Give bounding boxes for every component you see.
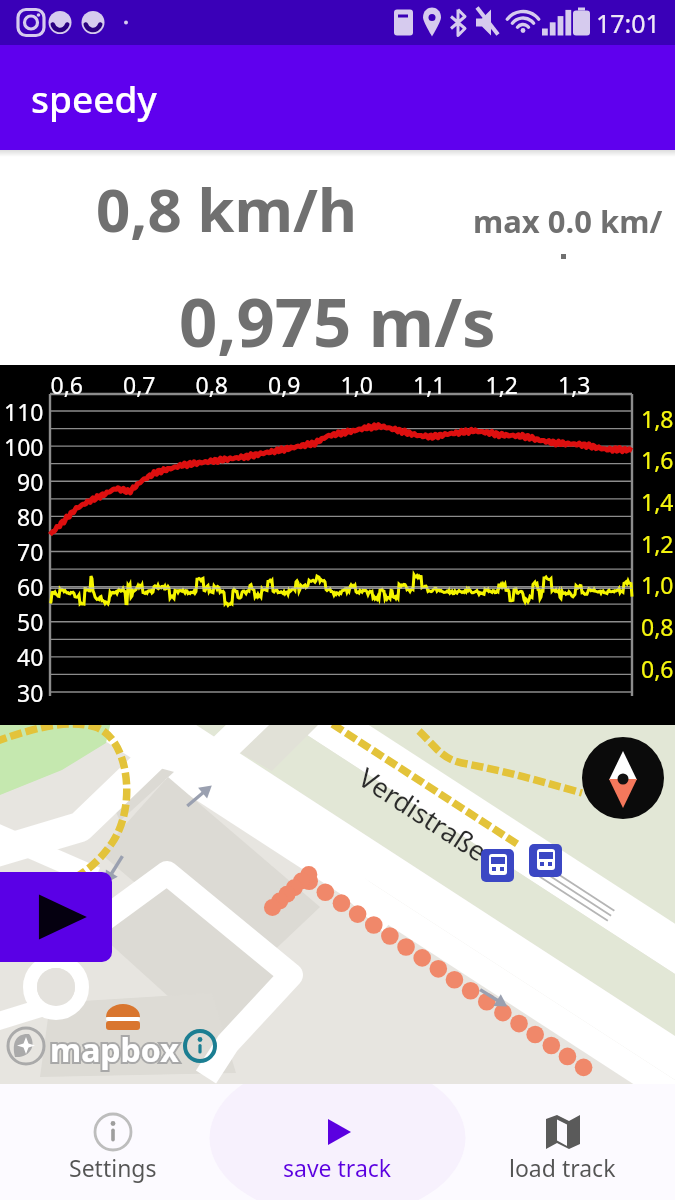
staticText: 0,8 km/h — [96, 168, 357, 250]
staticText: load track — [509, 1152, 616, 1183]
staticText: 0,975 m/s — [179, 275, 496, 366]
button[interactable]: save track — [225, 1084, 450, 1200]
staticText: max 0.0 km/ — [473, 200, 663, 242]
staticText: Settings — [69, 1152, 157, 1183]
staticText: save track — [283, 1152, 392, 1183]
staticText: speedy — [31, 73, 157, 123]
staticText: 17:01 — [596, 6, 660, 40]
staticText: mapbox — [50, 1028, 179, 1072]
button[interactable]: Start tracking — [0, 872, 112, 962]
button[interactable]: Settings — [0, 1084, 225, 1200]
button[interactable]: load track — [450, 1084, 675, 1200]
staticText: mapbox — [50, 1028, 179, 1072]
